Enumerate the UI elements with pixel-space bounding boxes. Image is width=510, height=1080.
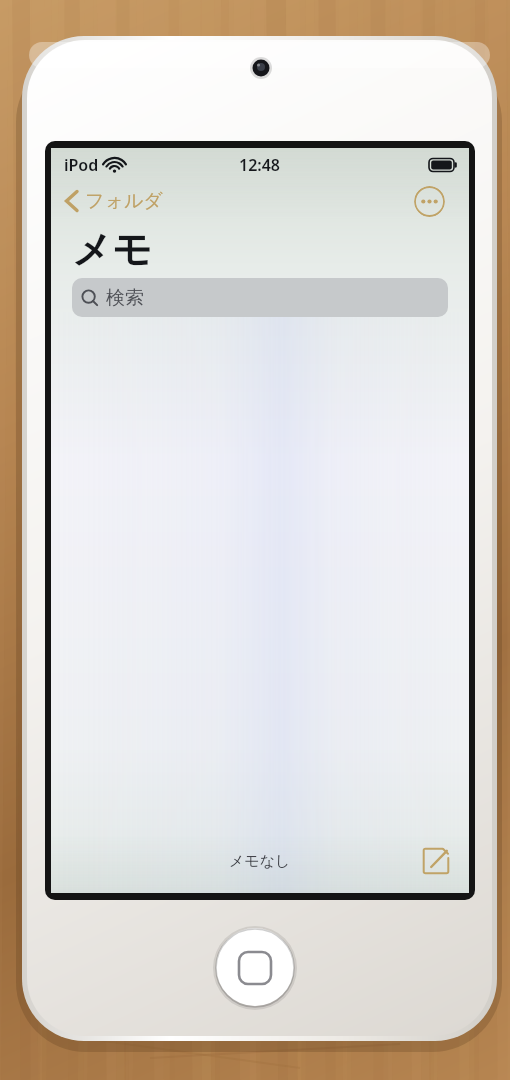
button[interactable]: More options — [414, 186, 445, 217]
staticText: メモなし — [229, 852, 291, 871]
staticText: 12:48 — [239, 154, 281, 176]
staticText: iPod — [64, 154, 99, 176]
staticText: フォルダ — [85, 189, 163, 213]
button[interactable]: 検索 — [72, 278, 448, 317]
staticText: 検索 — [106, 286, 144, 310]
staticText: メモ — [72, 225, 152, 274]
button[interactable]: フォルダ — [61, 186, 167, 216]
button[interactable]: Compose new note — [421, 846, 451, 876]
